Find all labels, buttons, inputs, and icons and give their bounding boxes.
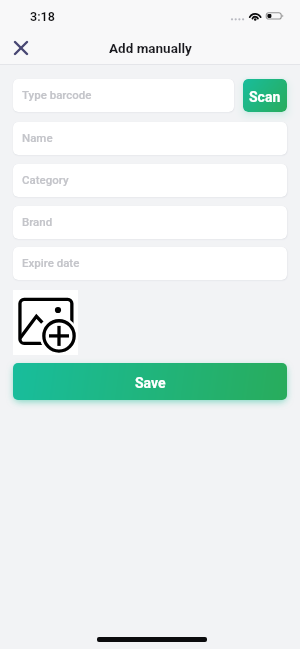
button[interactable]: Save: [13, 363, 287, 400]
button[interactable]: Close: [7, 34, 35, 62]
staticText: Brand: [22, 215, 53, 228]
staticText: 3:18: [30, 9, 55, 24]
button[interactable]: Name: [13, 122, 287, 155]
staticText: Add manually: [109, 40, 192, 56]
button[interactable]: Brand: [13, 206, 287, 239]
button[interactable]: Add image: [13, 290, 78, 355]
button[interactable]: Category: [13, 164, 287, 197]
button[interactable]: Type barcode: [13, 79, 234, 112]
staticText: Category: [22, 173, 69, 186]
button[interactable]: Expire date: [13, 247, 287, 280]
staticText: Expire date: [22, 256, 80, 269]
staticText: Type barcode: [22, 88, 92, 101]
staticText: Scan: [249, 89, 281, 105]
staticText: Save: [135, 375, 166, 391]
button[interactable]: Scan: [243, 79, 287, 112]
staticText: Name: [22, 131, 53, 144]
